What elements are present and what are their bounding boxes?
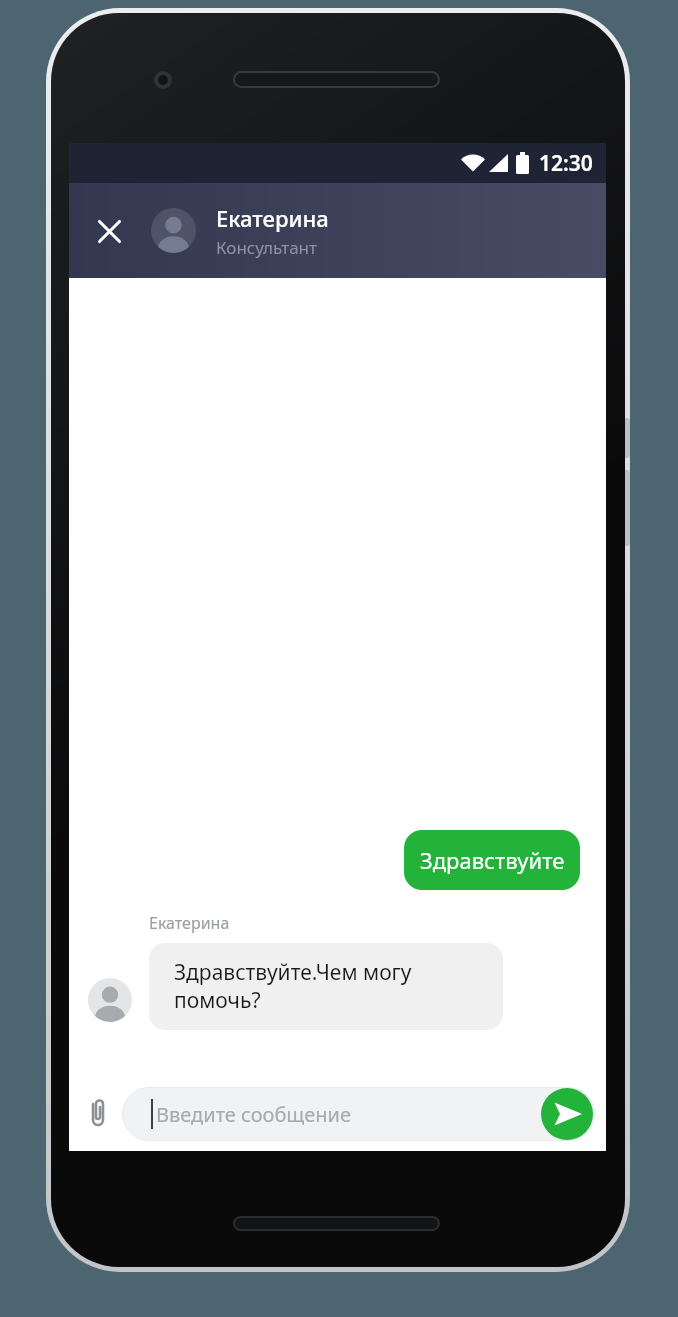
staticText: Екатерина (216, 203, 329, 233)
button[interactable] (85, 207, 133, 255)
staticText: Консультант (216, 236, 317, 259)
staticText: Введите сообщение (156, 1101, 352, 1128)
staticText: Екатерина (149, 912, 230, 934)
staticText: 12:30 (539, 149, 593, 178)
button[interactable]: Введите сообщение (122, 1087, 595, 1141)
button[interactable] (541, 1088, 593, 1140)
button[interactable] (80, 1093, 116, 1133)
staticText: Здравствуйте (420, 845, 565, 875)
staticText: Здравствуйте.Чем могу помочь? (174, 958, 412, 1014)
